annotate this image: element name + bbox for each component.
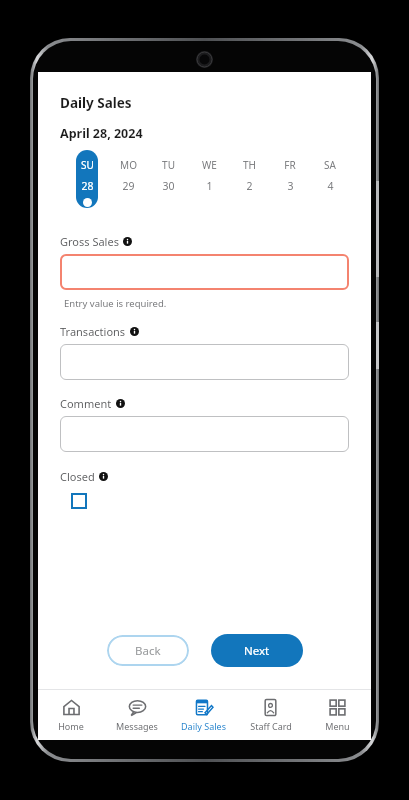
staticText: Gross Sales — [60, 234, 119, 249]
staticText: 4 — [327, 179, 334, 193]
button[interactable]: Staff Card — [237, 690, 304, 740]
button[interactable]: Menu — [304, 690, 371, 740]
other: Info — [116, 399, 125, 408]
other: Info — [99, 472, 108, 481]
button[interactable]: TH — [238, 156, 260, 193]
button[interactable]: SU — [76, 150, 98, 208]
staticText: April 28, 2024 — [60, 125, 143, 142]
staticText: Comment — [60, 396, 112, 411]
staticText: Next — [244, 643, 270, 659]
button[interactable] — [60, 344, 349, 380]
staticText: Messages — [116, 720, 158, 732]
button[interactable]: Messages — [104, 690, 170, 740]
staticText: 1 — [206, 179, 213, 193]
staticText: Entry value is required. — [64, 297, 167, 310]
button[interactable]: Daily Sales — [170, 690, 237, 740]
staticText: FR — [284, 158, 296, 172]
staticText: Menu — [325, 720, 350, 732]
staticText: Closed — [60, 469, 95, 484]
staticText: Daily Sales — [181, 720, 226, 732]
button[interactable]: TU — [157, 156, 179, 193]
button[interactable] — [60, 416, 349, 452]
staticText: SU — [81, 158, 94, 172]
button[interactable]: Next — [211, 634, 303, 667]
button[interactable]: Back — [107, 635, 189, 666]
staticText: TH — [243, 158, 256, 172]
staticText: MO — [120, 158, 137, 172]
staticText: Transactions — [60, 324, 126, 339]
other: Info — [130, 327, 139, 336]
button[interactable]: SA — [319, 156, 341, 193]
other: Info — [123, 237, 132, 246]
staticText: TU — [162, 158, 175, 172]
button[interactable]: MO — [117, 156, 139, 193]
button[interactable] — [68, 490, 90, 512]
button[interactable]: Home — [38, 690, 104, 740]
staticText: 2 — [246, 179, 253, 193]
staticText: 30 — [162, 179, 175, 193]
staticText: SA — [324, 158, 336, 172]
staticText: Home — [58, 720, 84, 732]
staticText: 29 — [122, 179, 135, 193]
button[interactable]: WE — [198, 156, 220, 193]
staticText: Staff Card — [250, 720, 292, 732]
staticText: Back — [135, 643, 161, 659]
staticText: WE — [202, 158, 217, 172]
staticText: 28 — [81, 179, 94, 193]
button[interactable]: FR — [279, 156, 301, 193]
button[interactable] — [60, 254, 349, 290]
staticText: 3 — [287, 179, 294, 193]
staticText: Daily Sales — [60, 94, 132, 112]
